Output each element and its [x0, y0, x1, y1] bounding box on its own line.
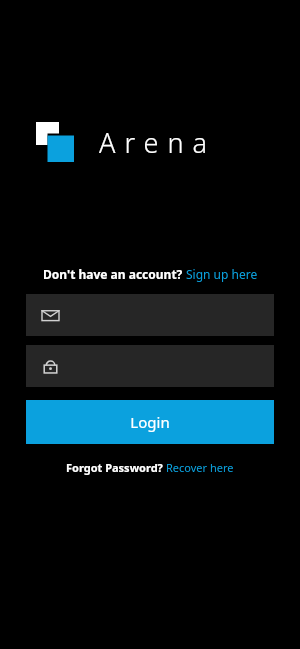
staticText: Recover here	[166, 460, 234, 475]
staticText: Sign up here	[186, 266, 258, 282]
button[interactable]: Login	[26, 400, 274, 444]
staticText: Forgot Password?	[66, 460, 166, 475]
staticText: Login	[130, 412, 170, 432]
staticText: Don't have an account?	[43, 266, 186, 282]
button[interactable]: Password	[26, 345, 274, 387]
staticText: Arena	[99, 124, 216, 161]
button[interactable]: Sign up here	[186, 266, 258, 282]
button[interactable]: Recover here	[166, 460, 234, 475]
button[interactable]: Email address	[26, 294, 274, 336]
